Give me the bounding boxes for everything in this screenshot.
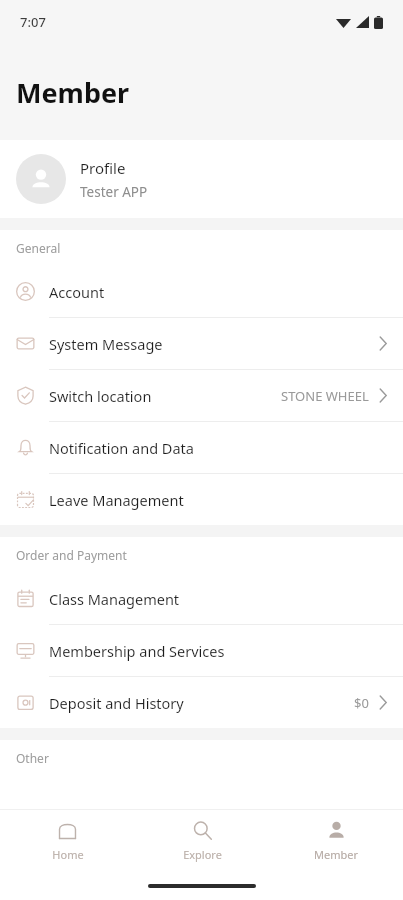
staticText: Order and Payment <box>16 547 127 563</box>
button[interactable]: Membership and Services <box>0 625 403 677</box>
staticText: 7:07 <box>20 13 46 31</box>
staticText: General <box>16 240 61 256</box>
staticText: Member <box>16 74 130 111</box>
button[interactable]: Home <box>0 814 135 868</box>
staticText: System Message <box>49 334 163 354</box>
staticText: $0 <box>354 694 369 712</box>
staticText: Account <box>49 282 105 302</box>
button[interactable]: Deposit and History <box>0 677 403 728</box>
staticText: Notification and Data <box>49 438 194 458</box>
button[interactable]: Account <box>0 266 403 318</box>
staticText: Other <box>16 750 49 766</box>
button[interactable]: System Message <box>0 318 403 370</box>
button[interactable]: Profile <box>0 140 403 218</box>
staticText: STONE WHEEL <box>281 387 369 405</box>
button[interactable]: Leave Management <box>0 474 403 525</box>
staticText: Member <box>314 847 358 862</box>
button[interactable]: Member <box>269 814 403 868</box>
staticText: Switch location <box>49 386 152 406</box>
button[interactable]: Notification and Data <box>0 422 403 474</box>
staticText: Explore <box>183 847 222 862</box>
button[interactable]: Class Management <box>0 573 403 625</box>
staticText: Profile <box>80 158 126 178</box>
staticText: Tester APP <box>80 183 148 201</box>
button[interactable]: Switch location <box>0 370 403 422</box>
staticText: Class Management <box>49 589 180 609</box>
staticText: Deposit and History <box>49 693 184 713</box>
staticText: Membership and Services <box>49 641 225 661</box>
button[interactable]: Explore <box>135 814 269 868</box>
staticText: Home <box>52 847 84 862</box>
staticText: Leave Management <box>49 490 184 510</box>
